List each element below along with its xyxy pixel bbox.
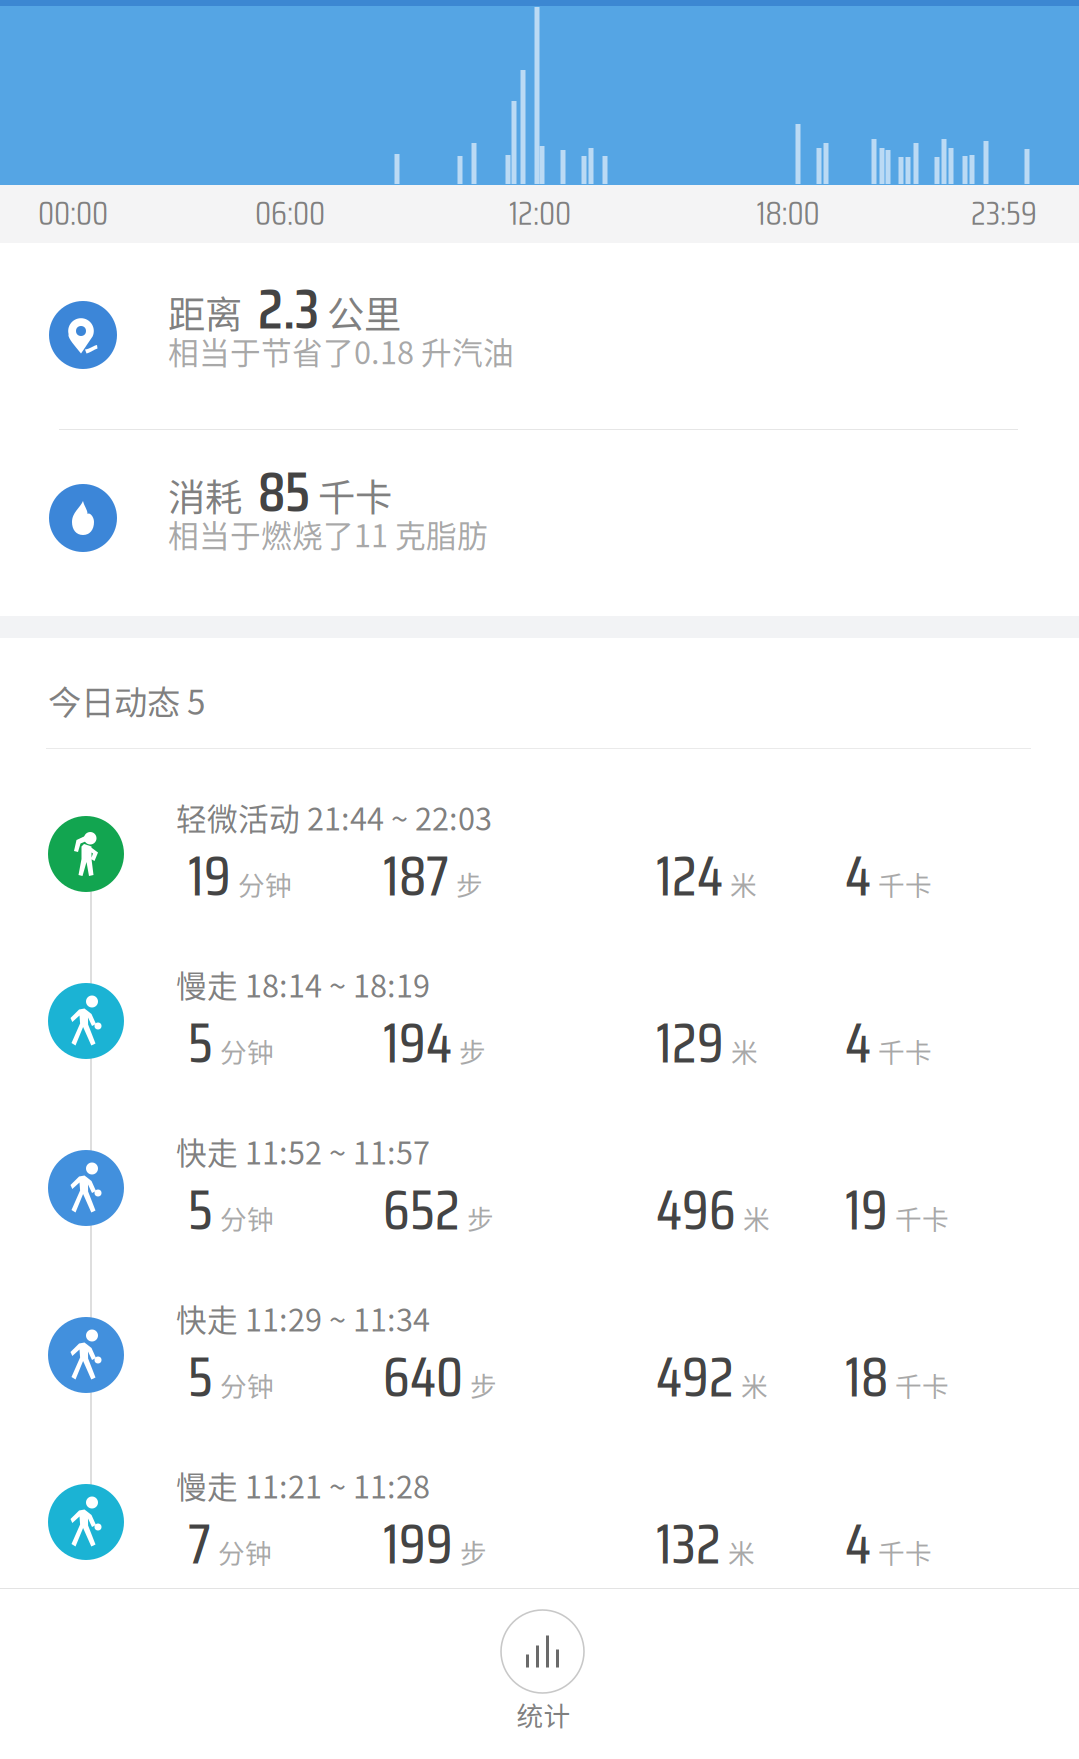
staticText: 12:00: [509, 187, 571, 239]
button[interactable]: 快走 11:29 ~ 11:34: [0, 1296, 1079, 1463]
staticText: 千卡: [895, 1366, 949, 1404]
staticText: 消耗: [168, 468, 242, 522]
staticText: 米: [730, 865, 757, 903]
staticText: 194: [383, 999, 452, 1087]
staticText: 199: [383, 1500, 453, 1588]
staticText: 快走 11:52 ~ 11:57: [176, 1129, 430, 1173]
staticText: 23:59: [971, 187, 1037, 239]
staticText: 相当于燃烧了11 克脂肪: [168, 512, 488, 556]
staticText: 千卡: [895, 1199, 949, 1237]
staticText: 5: [188, 999, 213, 1087]
staticText: 米: [728, 1533, 755, 1571]
staticText: 慢走 11:21 ~ 11:28: [176, 1463, 430, 1507]
button[interactable]: 统计: [0, 1589, 1079, 1759]
staticText: 步: [456, 865, 483, 903]
staticText: 19: [188, 832, 231, 920]
button[interactable]: 消耗: [0, 486, 1079, 616]
staticText: 7: [188, 1500, 211, 1588]
staticText: 距离: [168, 285, 242, 339]
staticText: 124: [656, 832, 723, 920]
staticText: 相当于节省了0.18 升汽油: [168, 329, 514, 373]
staticText: 分钟: [238, 865, 292, 903]
staticText: 132: [656, 1500, 721, 1588]
staticText: 5: [188, 1166, 213, 1254]
staticText: 快走 11:29 ~ 11:34: [176, 1296, 430, 1340]
staticText: 步: [467, 1199, 494, 1237]
staticText: 4: [845, 832, 871, 920]
staticText: 米: [741, 1366, 768, 1404]
staticText: 分钟: [218, 1533, 272, 1571]
staticText: 00:00: [38, 187, 108, 239]
staticText: 4: [845, 999, 871, 1087]
button[interactable]: 快走 11:52 ~ 11:57: [0, 1129, 1079, 1296]
staticText: 4: [845, 1500, 871, 1588]
staticText: 652: [383, 1166, 460, 1254]
staticText: 492: [656, 1333, 734, 1421]
staticText: 步: [459, 1032, 486, 1070]
staticText: 640: [383, 1333, 463, 1421]
button[interactable]: 慢走 11:21 ~ 11:28: [0, 1463, 1079, 1630]
staticText: 18:00: [756, 187, 819, 239]
staticText: 步: [460, 1533, 487, 1571]
staticText: 轻微活动 21:44 ~ 22:03: [176, 795, 492, 839]
staticText: 18: [845, 1333, 888, 1421]
staticText: 米: [731, 1032, 758, 1070]
staticText: 85: [258, 448, 310, 536]
staticText: 187: [383, 832, 449, 920]
staticText: 千卡: [878, 865, 932, 903]
staticText: 公里: [327, 285, 401, 339]
staticText: 19: [845, 1166, 888, 1254]
staticText: 分钟: [220, 1199, 274, 1237]
staticText: 129: [656, 999, 724, 1087]
button[interactable]: 轻微活动 21:44 ~ 22:03: [0, 795, 1079, 962]
staticText: 统计: [516, 1695, 570, 1734]
staticText: 步: [470, 1366, 497, 1404]
staticText: 千卡: [878, 1533, 932, 1571]
button[interactable]: 距离: [0, 303, 1079, 433]
staticText: 千卡: [878, 1032, 932, 1070]
staticText: 496: [656, 1166, 736, 1254]
staticText: 分钟: [220, 1366, 274, 1404]
staticText: 今日动态 5: [48, 676, 206, 724]
staticText: 米: [743, 1199, 770, 1237]
staticText: 5: [188, 1333, 213, 1421]
staticText: 慢走 18:14 ~ 18:19: [176, 962, 430, 1006]
staticText: 千卡: [318, 468, 392, 522]
staticText: 分钟: [220, 1032, 274, 1070]
staticText: 2.3: [258, 265, 319, 353]
staticText: 06:00: [255, 187, 325, 239]
button[interactable]: 慢走 18:14 ~ 18:19: [0, 962, 1079, 1129]
